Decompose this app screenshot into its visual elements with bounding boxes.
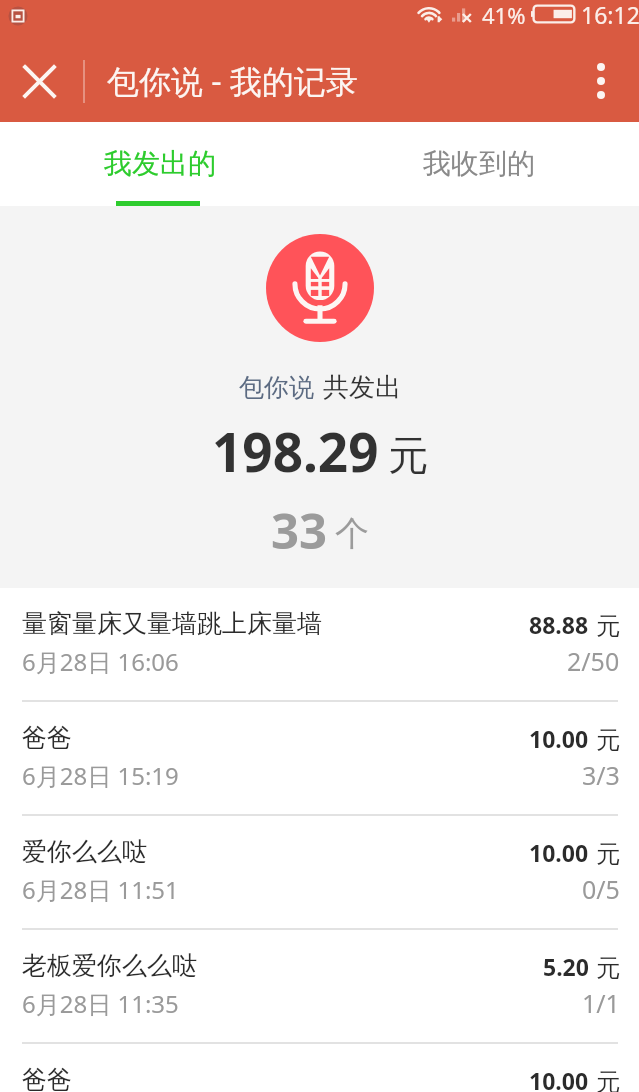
staticText: 0/5 (582, 872, 620, 906)
button[interactable]: 我收到的 (319, 122, 639, 206)
staticText: 爸爸 (22, 722, 72, 753)
staticText: 个 (335, 512, 369, 555)
staticText: 元 (388, 430, 428, 480)
staticText: 量窗量床又量墙跳上床量墙 (22, 608, 322, 639)
staticText: 我收到的 (423, 146, 535, 181)
button[interactable]: Close (0, 40, 78, 122)
staticText: 2/50 (567, 644, 620, 678)
staticText: 元 (596, 725, 620, 755)
staticText: 包你说 (239, 372, 314, 403)
staticText: 包你说 - 我的记录 (107, 59, 358, 103)
button[interactable]: 老板爱你么么哒 (0, 930, 639, 1042)
staticText: 198.29 (212, 415, 379, 487)
button[interactable]: 爸爸 (0, 1044, 639, 1092)
staticText: 6月28日 11:35 (22, 987, 179, 1020)
staticText: 元 (596, 611, 620, 641)
button[interactable]: 我发出的 (0, 122, 319, 206)
staticText: 10.00 (529, 837, 589, 868)
staticText: 元 (596, 839, 620, 869)
button[interactable]: 量窗量床又量墙跳上床量墙 (0, 588, 639, 700)
staticText: 元 (596, 1067, 620, 1092)
staticText: 6月28日 15:19 (22, 759, 179, 792)
button[interactable]: More options (571, 40, 639, 122)
staticText: 1/1 (582, 986, 620, 1020)
staticText: 元 (596, 953, 620, 983)
staticText: 88.88 (529, 609, 589, 640)
staticText: 41% (482, 0, 526, 30)
staticText: 爱你么么哒 (22, 836, 147, 867)
staticText: 10.00 (529, 1065, 589, 1092)
staticText: 爸爸 (22, 1064, 72, 1092)
staticText: 共发出 (323, 371, 401, 404)
staticText: 16:12 (581, 0, 639, 30)
staticText: 33 (271, 497, 328, 564)
staticText: 6月28日 11:51 (22, 873, 179, 906)
button[interactable]: 爱你么么哒 (0, 816, 639, 928)
staticText: 10.00 (529, 723, 589, 754)
staticText: 老板爱你么么哒 (22, 950, 197, 981)
staticText: 5.20 (543, 951, 589, 982)
button[interactable]: Voice record (266, 234, 374, 342)
staticText: 3/3 (582, 758, 620, 792)
button[interactable]: 爸爸 (0, 702, 639, 814)
staticText: 我发出的 (104, 146, 216, 181)
staticText: 6月28日 16:06 (22, 645, 179, 678)
